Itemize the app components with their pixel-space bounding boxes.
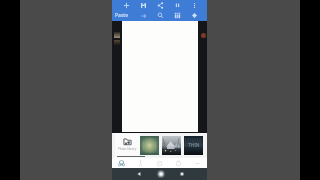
- button[interactable]: Search: [156, 11, 165, 20]
- staticText: Photo library: [118, 147, 137, 151]
- button[interactable]: Back: [134, 168, 144, 180]
- button[interactable]: Save: [139, 1, 148, 10]
- button[interactable]: Recents: [177, 168, 187, 180]
- button[interactable]: Paste: [114, 12, 130, 19]
- button[interactable]: Add: [122, 1, 131, 10]
- button[interactable]: Share: [156, 1, 165, 10]
- button[interactable]: Home: [156, 168, 166, 180]
- button[interactable]: Redo: [139, 11, 148, 20]
- button[interactable]: Photo 3: [184, 136, 203, 155]
- button[interactable]: Table: [173, 11, 182, 20]
- button[interactable]: More: [188, 158, 207, 168]
- button[interactable]: Explore: [150, 158, 169, 168]
- button[interactable]: Photo 1: [140, 136, 159, 155]
- staticText: Paste: [115, 12, 129, 19]
- staticText: THIN: [188, 142, 200, 149]
- button[interactable]: Shape: [190, 11, 199, 20]
- button[interactable]: Vehicle: [112, 158, 131, 168]
- button[interactable]: Walk: [131, 158, 150, 168]
- button[interactable]: Bag: [169, 158, 188, 168]
- button[interactable]: Photo library: [115, 133, 140, 158]
- button[interactable]: Photo 2: [162, 136, 181, 155]
- button[interactable]: Pause: [173, 1, 182, 10]
- button[interactable]: More options: [190, 1, 199, 10]
